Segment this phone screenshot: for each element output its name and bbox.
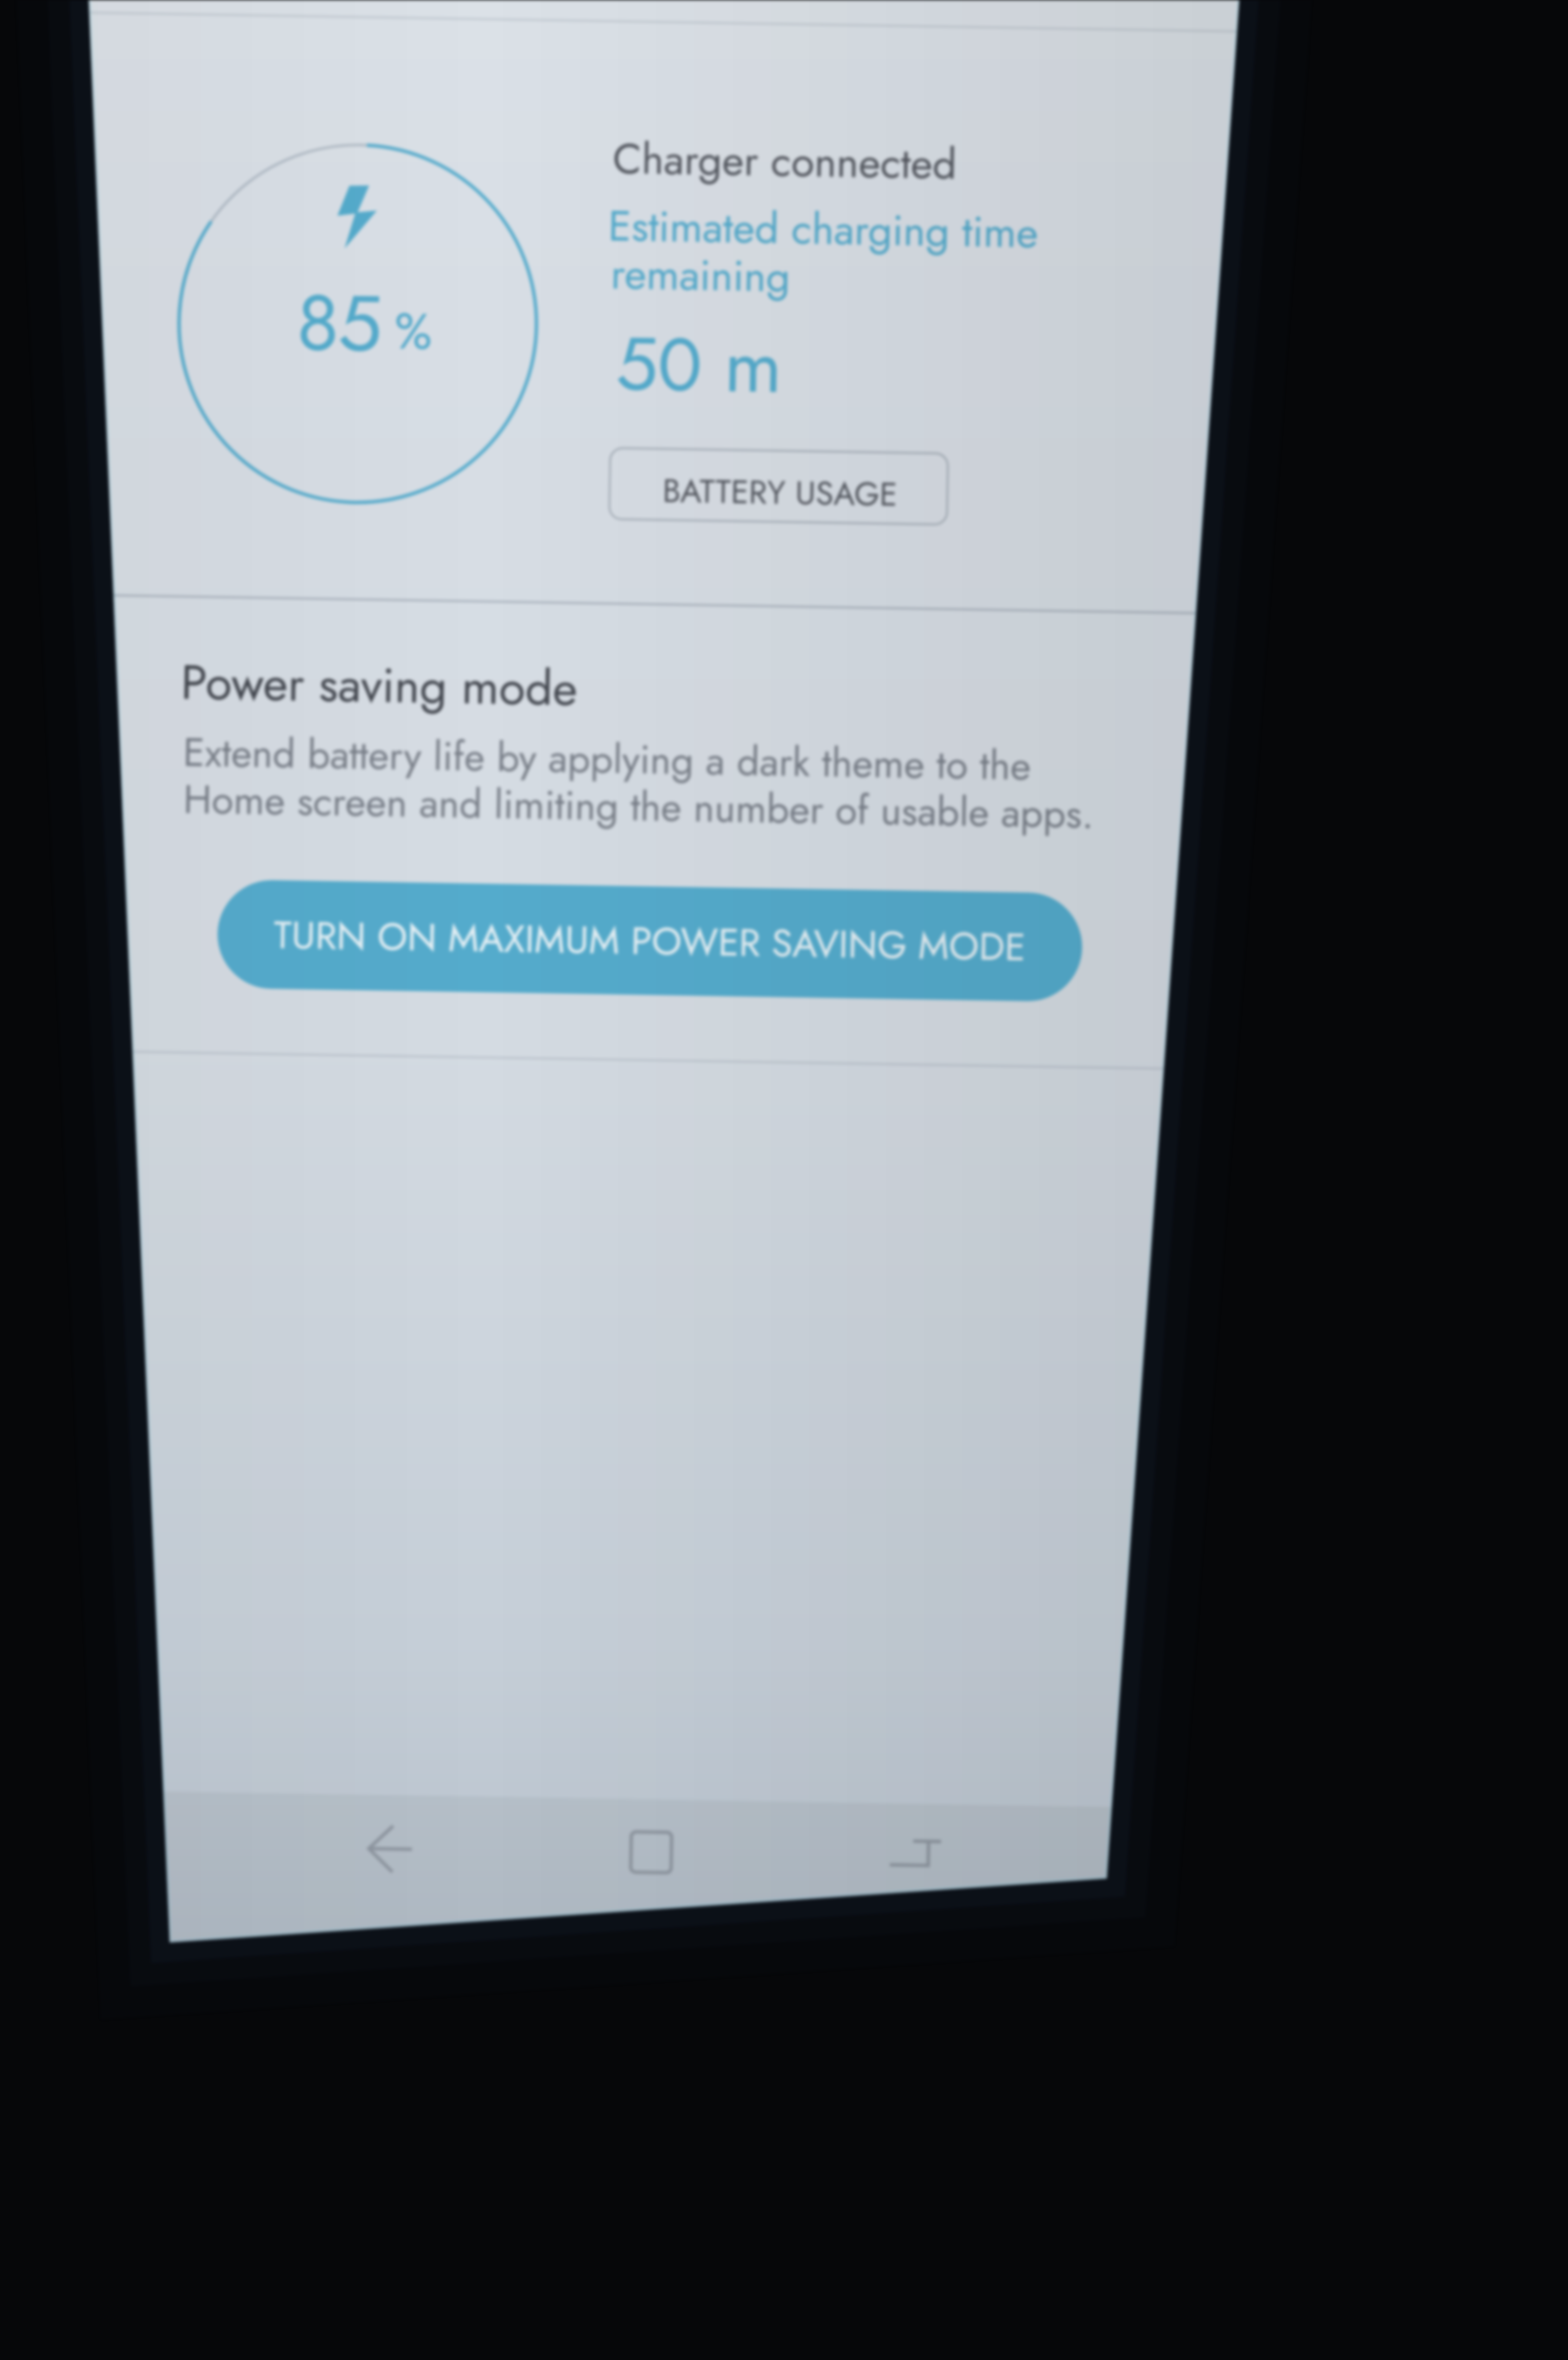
button[interactable]: Turn on maximum power saving mode xyxy=(218,872,1082,1009)
button[interactable]: Recent apps xyxy=(866,1816,966,1890)
button[interactable]: Battery usage xyxy=(610,445,947,527)
button[interactable]: Home xyxy=(606,1807,696,1898)
button[interactable]: Back xyxy=(344,1801,442,1894)
